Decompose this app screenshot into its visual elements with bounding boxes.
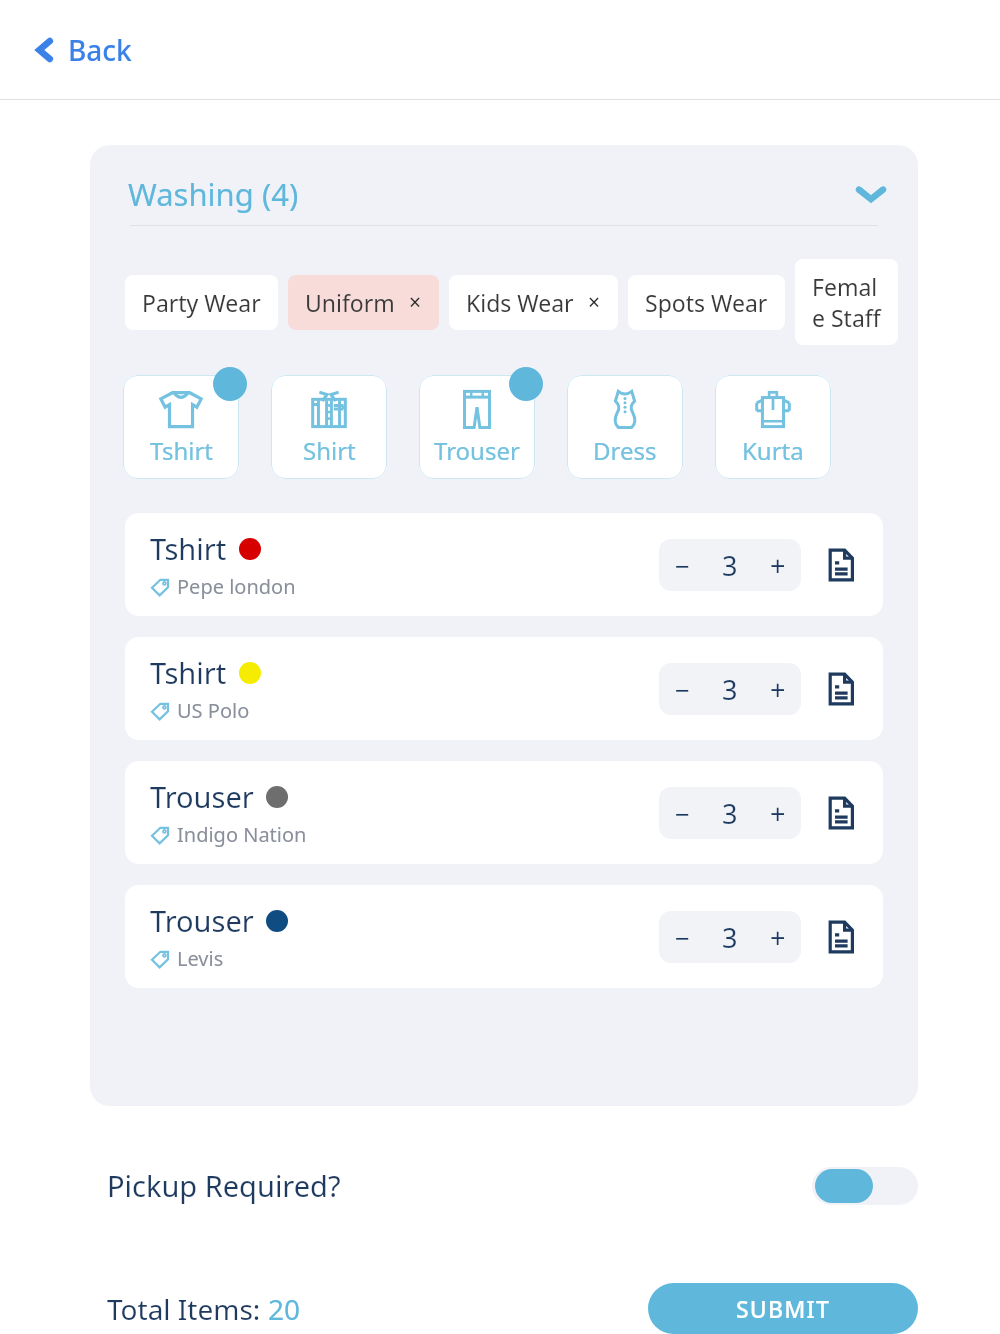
- staticText: Levis: [177, 945, 224, 972]
- button[interactable]: Back: [22, 23, 144, 77]
- button[interactable]: Increase: [755, 787, 801, 839]
- button[interactable]: Kids Wear: [449, 275, 618, 330]
- button[interactable]: Female Staff: [795, 259, 898, 345]
- staticText: Trouser: [434, 434, 520, 467]
- button[interactable]: Shirt: [271, 375, 387, 479]
- staticText: Shirt: [303, 434, 356, 467]
- button[interactable]: Trouser: [125, 885, 883, 988]
- staticText: +: [770, 795, 786, 832]
- button[interactable]: Spots Wear: [628, 275, 785, 330]
- staticText: Dress: [593, 434, 657, 467]
- staticText: Kids Wear: [466, 287, 574, 318]
- staticText: Tshirt: [150, 653, 227, 692]
- staticText: −: [675, 796, 690, 831]
- staticText: Pepe london: [177, 573, 296, 600]
- button[interactable]: Uniform: [288, 275, 439, 330]
- staticText: Party Wear: [142, 287, 261, 318]
- staticText: 3: [722, 919, 738, 956]
- staticText: −: [675, 548, 690, 583]
- button[interactable]: Tshirt: [125, 637, 883, 740]
- button[interactable]: Tshirt: [125, 513, 883, 616]
- button[interactable]: Tshirt: [123, 375, 239, 479]
- staticText: +: [770, 919, 786, 956]
- staticText: 3: [722, 671, 738, 708]
- button[interactable]: Party Wear: [125, 275, 278, 330]
- staticText: Washing (4): [128, 173, 299, 215]
- staticText: Pickup Required?: [107, 1166, 341, 1205]
- button[interactable]: Note: [819, 543, 863, 587]
- staticText: Back: [68, 31, 132, 69]
- button[interactable]: Note: [819, 791, 863, 835]
- staticText: SUBMIT: [736, 1293, 831, 1324]
- staticText: 3: [722, 547, 738, 584]
- staticText: Total Items:: [107, 1290, 268, 1328]
- staticText: Female Staff: [812, 271, 881, 333]
- staticText: 3: [722, 795, 738, 832]
- staticText: ×: [588, 288, 601, 317]
- button[interactable]: Trouser: [125, 761, 883, 864]
- staticText: Tshirt: [150, 529, 227, 568]
- button[interactable]: Decrease: [659, 539, 705, 591]
- staticText: Tshirt: [150, 434, 213, 467]
- staticText: −: [675, 672, 690, 707]
- staticText: US Polo: [177, 697, 250, 724]
- button[interactable]: Decrease: [659, 787, 705, 839]
- staticText: 20: [268, 1290, 301, 1328]
- staticText: +: [770, 547, 786, 584]
- button[interactable]: Trouser: [419, 375, 535, 479]
- staticText: Trouser: [150, 901, 254, 940]
- button[interactable]: Increase: [755, 663, 801, 715]
- button[interactable]: Increase: [755, 911, 801, 963]
- staticText: Spots Wear: [645, 287, 768, 318]
- button[interactable]: Dress: [567, 375, 683, 479]
- staticText: Uniform: [305, 287, 395, 318]
- button[interactable]: Decrease: [659, 663, 705, 715]
- staticText: ×: [409, 288, 422, 317]
- staticText: −: [675, 920, 690, 955]
- button[interactable]: Pickup Required toggle: [812, 1167, 918, 1205]
- button[interactable]: Decrease: [659, 911, 705, 963]
- staticText: Kurta: [742, 434, 804, 467]
- button[interactable]: Washing (4): [90, 145, 918, 225]
- button[interactable]: Increase: [755, 539, 801, 591]
- button[interactable]: Note: [819, 667, 863, 711]
- staticText: +: [770, 671, 786, 708]
- button[interactable]: Note: [819, 915, 863, 959]
- button[interactable]: SUBMIT: [648, 1283, 918, 1334]
- button[interactable]: Kurta: [715, 375, 831, 479]
- staticText: Indigo Nation: [177, 821, 307, 848]
- staticText: Trouser: [150, 777, 254, 816]
- other: Collapse: [856, 184, 886, 204]
